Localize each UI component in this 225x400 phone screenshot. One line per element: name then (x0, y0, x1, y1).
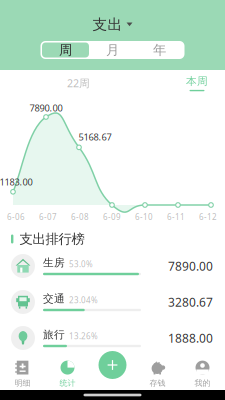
staticText: 周 (59, 42, 72, 58)
button[interactable]: 明细 (0, 358, 45, 390)
staticText: 统计 (59, 378, 75, 388)
staticText: 1183.00 (0, 176, 32, 188)
button[interactable]: 交通 (0, 284, 225, 320)
staticText: 13.26% (69, 331, 98, 341)
staticText: 6-06 (7, 212, 25, 222)
staticText: 明细 (14, 378, 30, 388)
staticText: 22周 (67, 76, 90, 90)
staticText: 5168.67 (78, 131, 111, 143)
button[interactable]: 生房 (0, 248, 225, 284)
staticText: 本周 (186, 75, 208, 88)
staticText: 6-11 (167, 212, 185, 222)
button[interactable]: 周 (42, 42, 89, 57)
staticText: 支出 (92, 15, 122, 33)
staticText: 3280.67 (168, 294, 213, 310)
staticText: 6-12 (199, 212, 217, 222)
staticText: 53.0% (69, 259, 93, 269)
staticText: 1888.00 (168, 330, 213, 346)
button[interactable]: 年 (136, 42, 183, 57)
staticText: 6-10 (135, 212, 153, 222)
staticText: 6-08 (71, 212, 89, 222)
staticText: 月 (106, 42, 119, 58)
button[interactable]: 存钱 (135, 358, 180, 390)
staticText: 生房 (43, 256, 65, 269)
button[interactable]: 本周 (182, 75, 212, 91)
staticText: 6-07 (39, 212, 57, 222)
staticText: 旅行 (43, 328, 65, 341)
staticText: 我的 (194, 378, 210, 388)
button[interactable]: 月 (89, 42, 136, 57)
staticText: 支出排行榜 (19, 231, 84, 247)
button[interactable]: 统计 (45, 358, 90, 390)
staticText: 存钱 (149, 378, 165, 388)
button[interactable]: 支出 (92, 17, 132, 32)
staticText: 7890.00 (168, 258, 213, 274)
staticText: 年 (153, 42, 166, 58)
button[interactable]: Add record (96, 349, 128, 381)
staticText: 交通 (43, 292, 65, 305)
staticText: 7890.00 (29, 102, 62, 114)
staticText: 6-09 (103, 212, 121, 222)
staticText: 23.04% (69, 295, 98, 305)
button[interactable]: 我的 (180, 358, 225, 390)
button[interactable]: 旅行 (0, 320, 225, 356)
